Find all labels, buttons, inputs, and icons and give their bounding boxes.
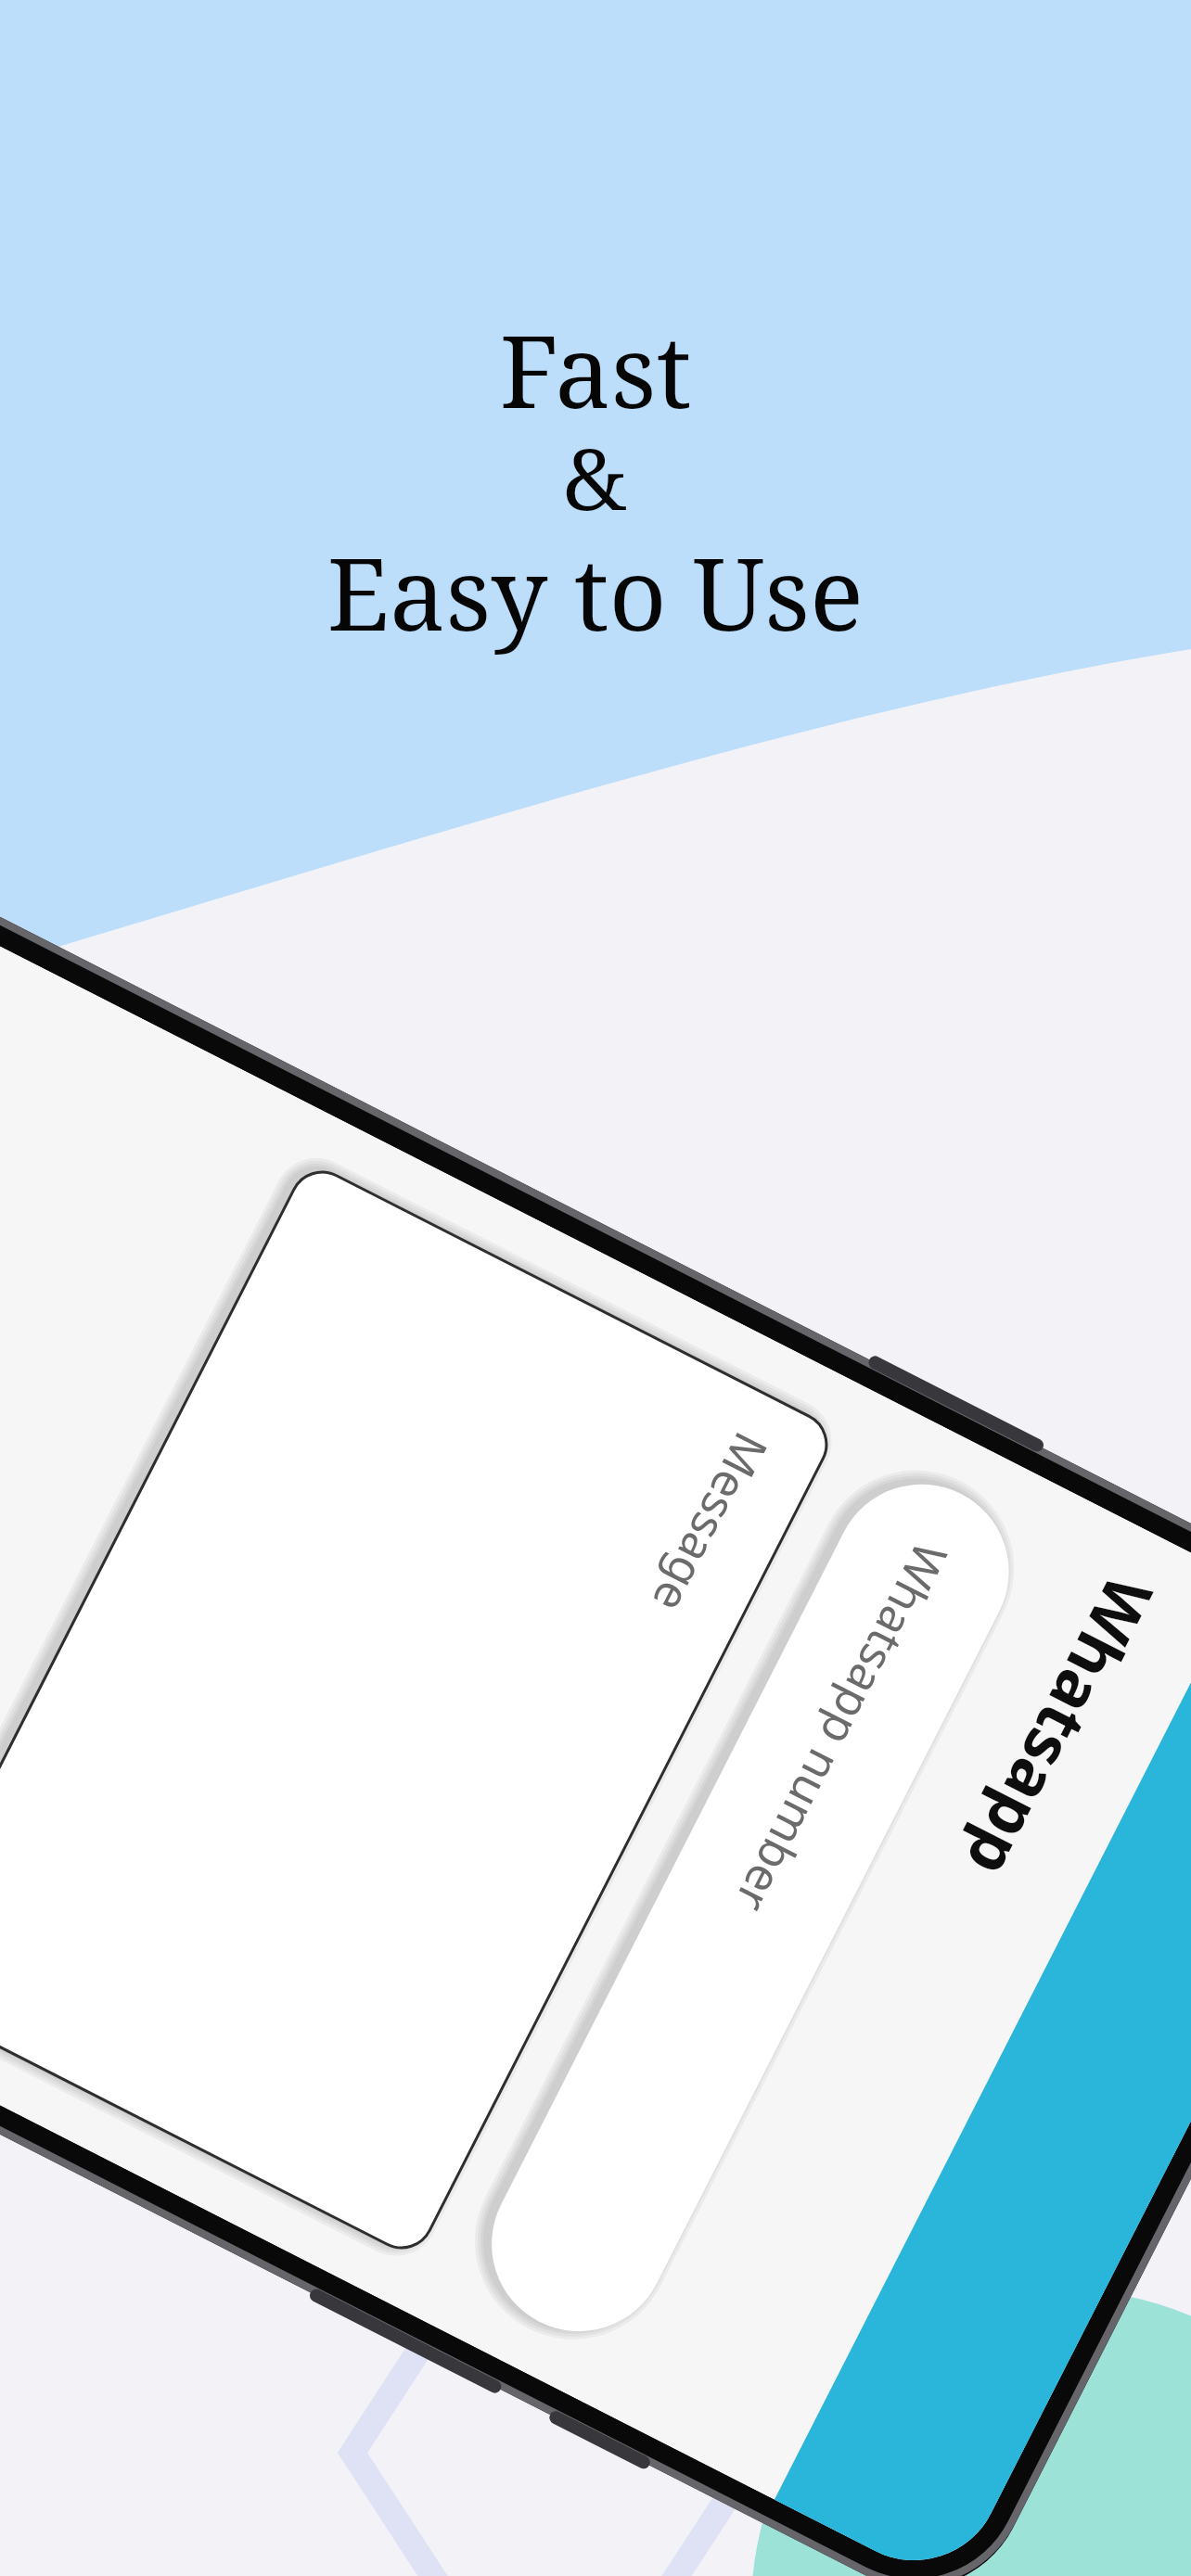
button[interactable]: Start Chatting xyxy=(162,929,238,1033)
